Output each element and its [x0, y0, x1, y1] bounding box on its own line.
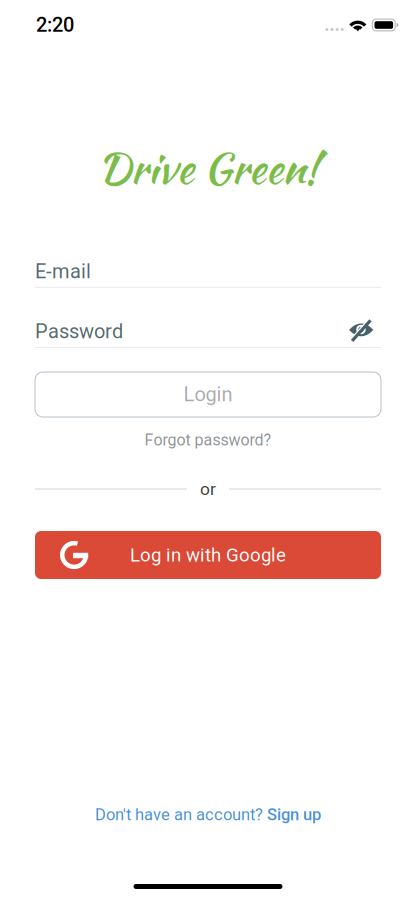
button[interactable]: Show password	[347, 322, 381, 341]
staticText: or	[200, 479, 216, 499]
button[interactable]: Don't have an account? Sign up	[95, 805, 321, 824]
staticText: 2:20	[36, 13, 74, 37]
staticText: E-mail	[35, 260, 91, 283]
staticText: Password	[35, 320, 123, 343]
staticText: Login	[183, 383, 232, 406]
staticText: Don't have an account? Sign up	[95, 805, 321, 824]
staticText: Drive Green!	[97, 137, 318, 199]
button[interactable]: Login	[35, 372, 381, 417]
staticText: Log in with Google	[130, 544, 286, 566]
button[interactable]: Forgot password?	[144, 431, 271, 449]
staticText: Forgot password?	[144, 431, 271, 449]
button[interactable]: Log in with Google	[35, 531, 381, 579]
